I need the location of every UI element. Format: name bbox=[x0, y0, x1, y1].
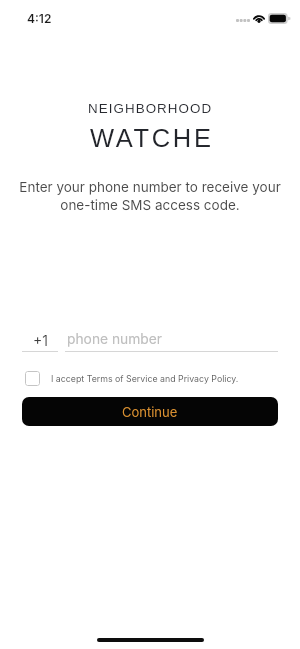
button[interactable]: phone number bbox=[65, 328, 278, 350]
staticText: NEIGHBORHOOD bbox=[88, 101, 213, 116]
other: Cellular signal bbox=[236, 19, 250, 22]
staticText: 4:12 bbox=[27, 11, 52, 26]
button[interactable]: Country code +1 bbox=[22, 329, 58, 351]
other: Wi-Fi bbox=[252, 12, 266, 23]
staticText: I accept Terms of Service and Privacy Po… bbox=[51, 373, 239, 384]
button[interactable]: Continue bbox=[22, 397, 278, 426]
staticText: phone number bbox=[67, 331, 163, 348]
button[interactable]: Accept terms checkbox bbox=[25, 368, 239, 388]
other: Accept terms checkbox bbox=[25, 371, 40, 386]
staticText: WATCHE bbox=[90, 124, 214, 152]
staticText: +1 bbox=[33, 332, 48, 349]
staticText: Continue bbox=[122, 404, 178, 420]
staticText: Enter your phone number to receive your … bbox=[10, 179, 290, 213]
other: Battery full bbox=[268, 13, 290, 24]
